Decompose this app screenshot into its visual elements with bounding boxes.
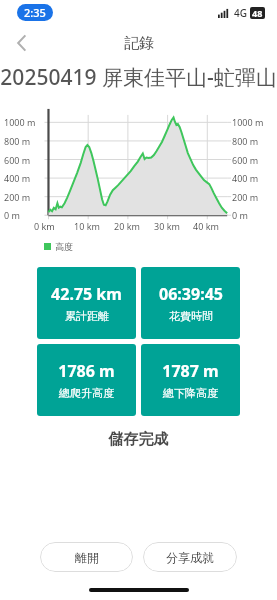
- staticText: 總爬升高度: [59, 386, 114, 400]
- staticText: 600 m: [232, 154, 259, 166]
- staticText: 1000 m: [232, 116, 264, 128]
- staticText: 600 m: [4, 154, 44, 166]
- staticText: 400 m: [232, 172, 259, 184]
- staticText: 0 m: [232, 209, 248, 221]
- staticText: 20 km: [114, 220, 140, 232]
- staticText: 1786 m: [58, 360, 115, 382]
- staticText: 800 m: [4, 135, 44, 147]
- staticText: 0 m: [4, 209, 44, 221]
- staticText: 離開: [75, 550, 99, 565]
- staticText: 20250419 屏東佳平山-虻彈山: [0, 63, 277, 92]
- staticText: 06:39:45: [159, 283, 223, 305]
- staticText: 400 m: [4, 172, 44, 184]
- staticText: 30 km: [154, 220, 180, 232]
- button[interactable]: Back: [0, 26, 44, 60]
- button[interactable]: 1787 m: [141, 344, 240, 416]
- button[interactable]: 06:39:45: [141, 267, 240, 339]
- button[interactable]: 分享成就: [143, 542, 237, 572]
- staticText: 200 m: [4, 191, 44, 203]
- staticText: 累計距離: [65, 309, 109, 323]
- staticText: 10 km: [74, 220, 100, 232]
- staticText: 記錄: [124, 34, 154, 53]
- staticText: 1000 m: [4, 116, 44, 128]
- staticText: 42.75 km: [51, 283, 122, 305]
- staticText: 0 km: [34, 220, 55, 232]
- staticText: 200 m: [232, 191, 259, 203]
- staticText: 40 km: [193, 220, 219, 232]
- staticText: 分享成就: [166, 550, 214, 565]
- staticText: 高度: [55, 241, 73, 252]
- staticText: 1787 m: [162, 360, 219, 382]
- staticText: 2:35: [24, 5, 46, 20]
- staticText: 花費時間: [169, 309, 213, 323]
- button[interactable]: 42.75 km: [37, 267, 136, 339]
- staticText: 4G: [234, 6, 247, 20]
- staticText: 800 m: [232, 135, 259, 147]
- button[interactable]: 1786 m: [37, 344, 136, 416]
- button[interactable]: 離開: [40, 542, 133, 572]
- staticText: 48: [252, 7, 263, 19]
- staticText: 儲存完成: [0, 430, 277, 449]
- staticText: 總下降高度: [163, 386, 218, 400]
